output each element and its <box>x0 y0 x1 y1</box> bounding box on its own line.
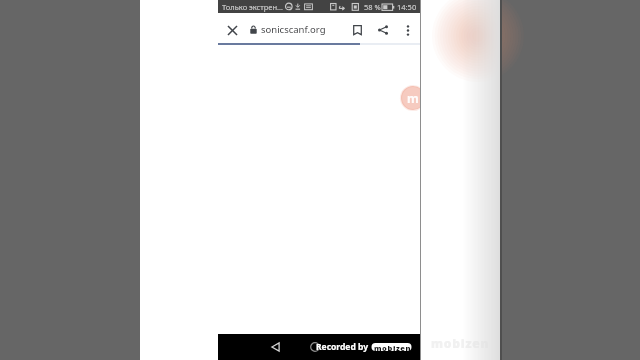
button[interactable]: Home <box>302 334 328 360</box>
button[interactable]: Bookmark <box>345 18 369 42</box>
button[interactable]: More options <box>396 18 420 42</box>
staticText: sonicscanf.org <box>261 23 326 36</box>
button[interactable]: Back <box>262 334 288 360</box>
staticText: 58 % <box>364 2 381 12</box>
staticText: Только экстрен… <box>222 2 284 12</box>
staticText: mobizen <box>374 343 412 353</box>
staticText: Recorded by <box>316 341 369 353</box>
staticText: mobizen <box>431 335 490 351</box>
staticText: 14:50 <box>397 2 417 12</box>
staticText: m <box>407 90 419 106</box>
button[interactable]: Close <box>220 18 244 42</box>
button[interactable]: Share <box>371 18 395 42</box>
